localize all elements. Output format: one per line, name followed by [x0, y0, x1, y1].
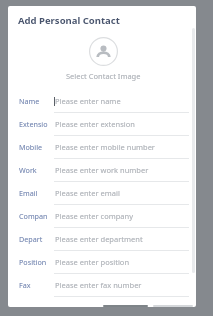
- staticText: Please enter position: [55, 257, 130, 267]
- staticText: Please enter fax number: [55, 280, 142, 290]
- staticText: Please enter email: [55, 188, 120, 198]
- staticText: Please enter extension: [55, 119, 135, 129]
- button[interactable]: Position: [8, 251, 196, 274]
- button[interactable]: Select Contact Image: [89, 37, 118, 66]
- staticText: Add Personal Contact: [18, 14, 120, 27]
- button[interactable]: Work: [8, 159, 196, 182]
- button[interactable]: Extension: [8, 113, 196, 136]
- staticText: Please enter name: [55, 96, 121, 106]
- button[interactable]: Mobile: [8, 136, 196, 159]
- button[interactable]: Email: [8, 182, 196, 205]
- button[interactable]: Name: [8, 90, 196, 113]
- button[interactable]: Department: [8, 228, 196, 251]
- staticText: Extension: [19, 119, 48, 129]
- staticText: Company: [19, 211, 48, 221]
- staticText: Position: [19, 257, 47, 267]
- staticText: Work: [19, 165, 37, 175]
- staticText: Please enter work number: [55, 165, 149, 175]
- button[interactable]: Fax: [8, 274, 196, 297]
- button[interactable]: Company: [8, 205, 196, 228]
- staticText: Department: [19, 234, 48, 244]
- staticText: Please enter mobile number: [55, 142, 155, 152]
- staticText: Please enter company: [55, 211, 133, 221]
- staticText: Select Contact Image: [66, 71, 141, 81]
- staticText: Mobile: [19, 142, 43, 152]
- button[interactable]: Cancel: [103, 305, 148, 307]
- staticText: Fax: [19, 280, 31, 290]
- staticText: Name: [19, 96, 40, 106]
- staticText: Email: [19, 188, 38, 198]
- staticText: Please enter department: [55, 234, 143, 244]
